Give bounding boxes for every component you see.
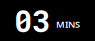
staticText: MINS: [56, 18, 80, 30]
button[interactable]: 03: [0, 0, 95, 41]
staticText: 03: [14, 0, 50, 40]
